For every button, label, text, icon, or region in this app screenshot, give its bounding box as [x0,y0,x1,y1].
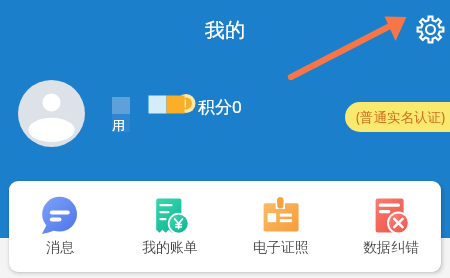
button[interactable]: 数据纠错 [336,181,441,272]
staticText: 用 [112,117,125,133]
staticText: 我的 [205,18,245,43]
button[interactable]: (普通实名认证) [345,102,450,132]
button[interactable]: 电子证照 [226,181,336,272]
staticText: 电子证照 [253,239,309,257]
staticText: (普通实名认证) [356,108,446,126]
button[interactable]: 我的账单 [115,181,225,272]
staticText: 我的账单 [142,239,198,257]
staticText: 积分0 [198,95,242,118]
button[interactable]: 消息 [9,181,115,272]
button[interactable]: Avatar [18,80,85,147]
staticText: 数据纠错 [363,239,419,257]
button[interactable]: Settings [414,13,447,46]
staticText: 消息 [46,239,74,257]
